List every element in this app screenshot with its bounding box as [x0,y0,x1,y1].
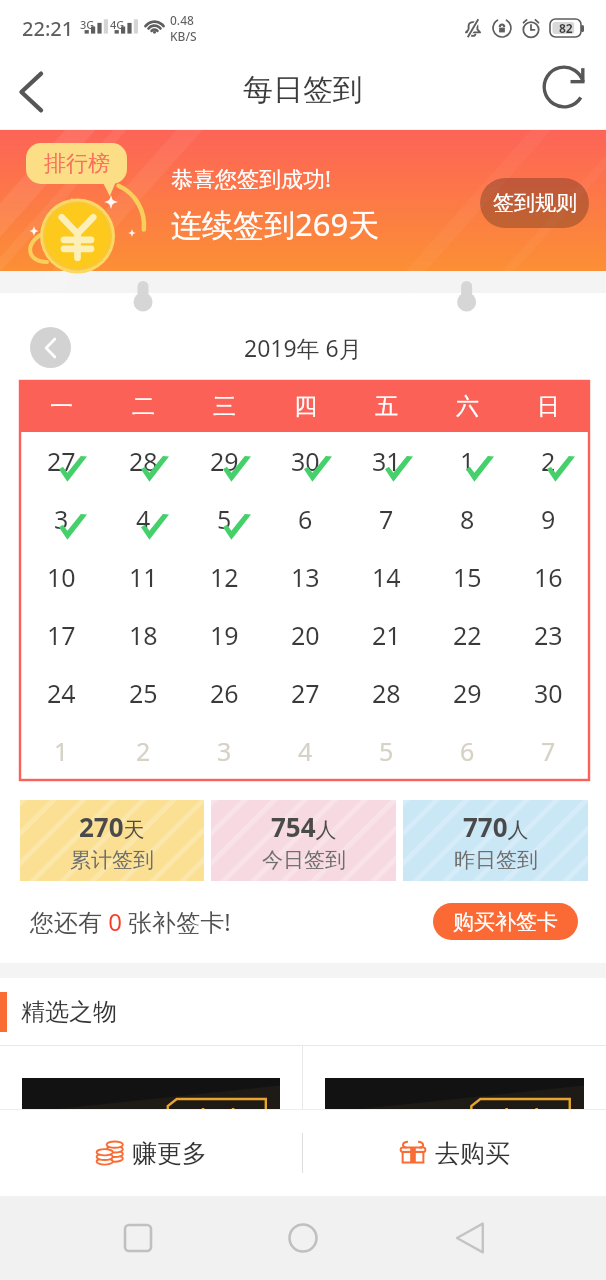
button[interactable]: 23 [508,606,589,664]
staticText: 4G [110,17,125,32]
staticText: 22:21 [22,15,74,42]
staticText: 28 [129,444,158,478]
button[interactable]: 28 [346,664,427,722]
staticText: 二 [132,392,155,421]
staticText: 28 [372,676,401,710]
staticText: 24 [47,676,76,710]
staticText: 12 [210,560,239,594]
button[interactable]: 30 [265,432,346,490]
staticText: 15 [453,560,482,594]
button[interactable]: 7 [346,490,427,548]
button[interactable]: 2 [508,432,589,490]
staticText: KB/S [170,28,197,44]
button[interactable]: 13 [265,548,346,606]
staticText: 一 [50,392,73,421]
button[interactable]: 8 [427,490,508,548]
staticText: 日 [537,392,560,421]
staticText: 连续签到269天 [171,203,380,245]
button[interactable]: 12 [184,548,265,606]
button[interactable]: 排行榜 [26,143,127,184]
staticText: 26 [210,676,239,710]
button[interactable]: 14 [346,548,427,606]
button[interactable]: 10 [20,548,102,606]
button[interactable]: 1 [20,722,102,780]
staticText: 19 [210,618,239,652]
button[interactable]: 9 [508,490,589,548]
staticText: 11 [129,560,158,594]
staticText: 2 [136,734,151,768]
button[interactable]: 3 [20,490,102,548]
button[interactable]: 29 [184,432,265,490]
button[interactable]: 770人 [403,800,588,881]
staticText: 16 [534,560,563,594]
button[interactable]: 22 [427,606,508,664]
button[interactable]: 7 [508,722,589,780]
staticText: 六 [456,392,479,421]
button[interactable]: 27 [20,432,102,490]
staticText: 17 [47,618,76,652]
staticText: 82 [559,20,573,36]
button[interactable]: 1 [427,432,508,490]
button[interactable]: 270天 [20,800,204,881]
button[interactable]: 25 [102,664,184,722]
staticText: 五 [375,392,398,421]
staticText: 29 [210,444,239,478]
button[interactable]: 5 [184,490,265,548]
button[interactable]: 27 [265,664,346,722]
staticText: 25 [129,676,158,710]
staticText: 31 [372,444,401,478]
button[interactable]: Previous month [30,327,71,368]
staticText: 排行榜 [44,150,110,178]
button[interactable]: 11 [102,548,184,606]
staticText: 20 [291,618,320,652]
button[interactable]: 4 [265,722,346,780]
staticText: 27 [291,676,320,710]
button[interactable]: 16 [508,548,589,606]
staticText: 6 [298,502,313,536]
button[interactable]: 24 [20,664,102,722]
button[interactable]: 签到规则 [480,178,589,228]
button[interactable]: Back [441,1210,497,1266]
button[interactable]: Refresh [544,55,606,129]
button[interactable]: 19 [184,606,265,664]
button[interactable]: 6 [265,490,346,548]
button[interactable]: 5 [346,722,427,780]
button[interactable]: 3 [184,722,265,780]
button[interactable]: 赚更多 [0,1110,302,1196]
button[interactable]: 去购买 [303,1110,606,1196]
button[interactable]: 20 [265,606,346,664]
staticText: 9 [541,502,556,536]
button[interactable]: 26 [184,664,265,722]
staticText: 三 [213,392,236,421]
button[interactable]: 29 [427,664,508,722]
button[interactable]: 购买补签卡 [433,903,578,940]
staticText: 昨日签到 [454,847,538,873]
staticText: 23 [534,618,563,652]
staticText: 270天 [79,809,145,844]
button[interactable]: 28 [102,432,184,490]
staticText: 27 [47,444,76,478]
button[interactable]: Back [0,55,62,129]
button[interactable]: 6 [427,722,508,780]
button[interactable]: 754人 [211,800,396,881]
staticText: 5 [217,502,232,536]
button[interactable]: 18 [102,606,184,664]
button[interactable]: 21 [346,606,427,664]
staticText: 恭喜您签到成功! [171,163,331,193]
staticText: 10 [47,560,76,594]
staticText: 购买补签卡 [453,909,558,935]
staticText: 22 [453,618,482,652]
button[interactable]: 2 [102,722,184,780]
staticText: 29 [453,676,482,710]
staticText: 0.48 [170,12,194,28]
staticText: 770人 [463,809,529,844]
button[interactable]: 17 [20,606,102,664]
button[interactable]: 4 [102,490,184,548]
button[interactable]: Home [275,1210,331,1266]
staticText: 4 [136,502,151,536]
button[interactable]: 15 [427,548,508,606]
button[interactable]: 31 [346,432,427,490]
button[interactable]: Recents [110,1210,166,1266]
button[interactable]: 30 [508,664,589,722]
staticText: 每日签到 [243,71,363,109]
